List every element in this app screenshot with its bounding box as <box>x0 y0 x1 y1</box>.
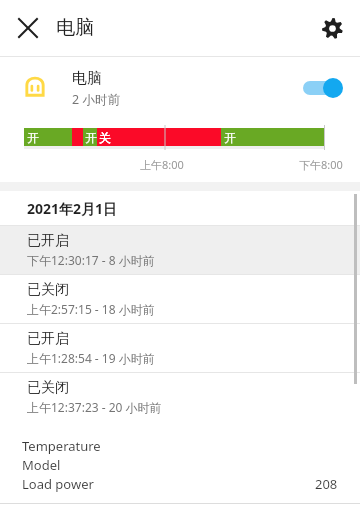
staticText: 下午8:00 <box>299 157 343 172</box>
staticText: 上午2:57:15 - 18 小时前 <box>27 301 155 317</box>
button[interactable]: 已关闭 <box>0 373 360 421</box>
staticText: 2 小时前 <box>72 91 120 108</box>
staticText: 上午12:37:23 - 20 小时前 <box>27 399 162 415</box>
staticText: 已关闭 <box>27 281 69 299</box>
staticText: 关 <box>99 130 111 145</box>
button[interactable]: 已开启 <box>0 226 360 274</box>
staticText: 电脑 <box>56 16 94 40</box>
staticText: 上午8:00 <box>140 157 184 172</box>
staticText: Temperature <box>22 437 101 455</box>
staticText: 已开启 <box>27 232 69 250</box>
staticText: 开 <box>85 130 97 145</box>
staticText: 上午1:28:54 - 19 小时前 <box>27 350 155 366</box>
staticText: Load power <box>22 475 94 493</box>
button[interactable]: Settings <box>304 0 360 56</box>
staticText: 2021年2月1日 <box>27 199 118 218</box>
staticText: 开 <box>224 130 236 145</box>
staticText: 已开启 <box>27 330 69 348</box>
staticText: 208 <box>315 475 338 493</box>
button[interactable]: Close <box>0 0 56 56</box>
staticText: 电脑 <box>72 69 102 88</box>
staticText: 关 <box>99 130 111 145</box>
staticText: 下午12:30:17 - 8 小时前 <box>27 252 155 268</box>
staticText: 开 <box>27 130 39 145</box>
button[interactable]: 电脑 <box>0 57 360 119</box>
button[interactable]: 已关闭 <box>0 275 360 323</box>
staticText: 已关闭 <box>27 379 69 397</box>
staticText: Model <box>22 456 61 474</box>
button[interactable]: 已开启 <box>0 324 360 372</box>
button[interactable]: Toggle power <box>299 73 347 103</box>
